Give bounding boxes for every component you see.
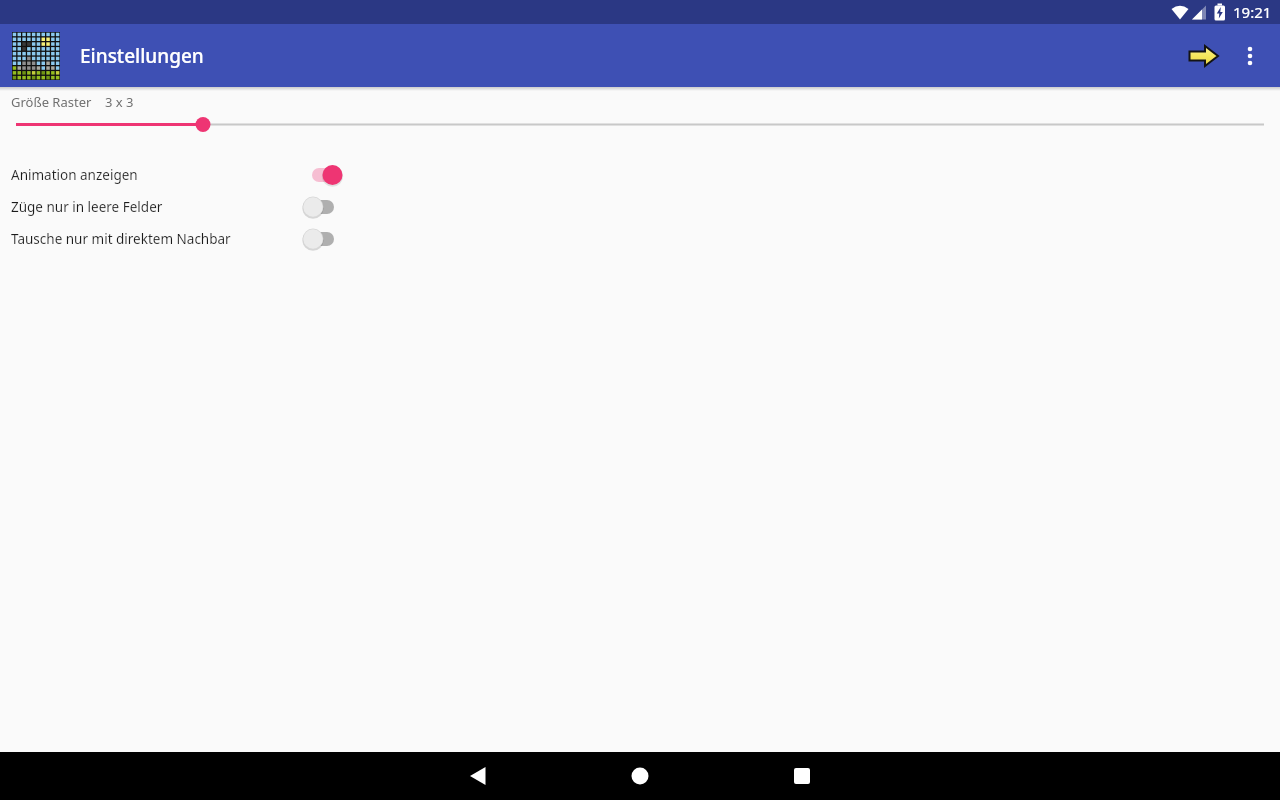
button[interactable] — [12, 32, 60, 80]
button[interactable]: Größe Raster — [11, 93, 134, 111]
button[interactable] — [0, 110, 1280, 140]
staticText: Animation anzeigen — [11, 166, 138, 184]
button[interactable]: Animation anzeigen — [0, 160, 1280, 190]
staticText: 19:21 — [1233, 2, 1272, 22]
staticText: Größe Raster — [11, 93, 92, 111]
button[interactable] — [630, 766, 650, 786]
button[interactable]: Züge nur in leere Felder — [0, 192, 1280, 222]
staticText: 3 x 3 — [105, 93, 134, 111]
staticText: Tausche nur mit direktem Nachbar — [11, 230, 231, 248]
button[interactable] — [1236, 36, 1264, 76]
staticText: Züge nur in leere Felder — [11, 198, 163, 216]
button[interactable] — [792, 766, 812, 786]
button[interactable] — [1188, 44, 1220, 68]
staticText: Einstellungen — [80, 43, 204, 69]
button[interactable]: Tausche nur mit direktem Nachbar — [0, 224, 1280, 254]
button[interactable] — [468, 766, 488, 786]
